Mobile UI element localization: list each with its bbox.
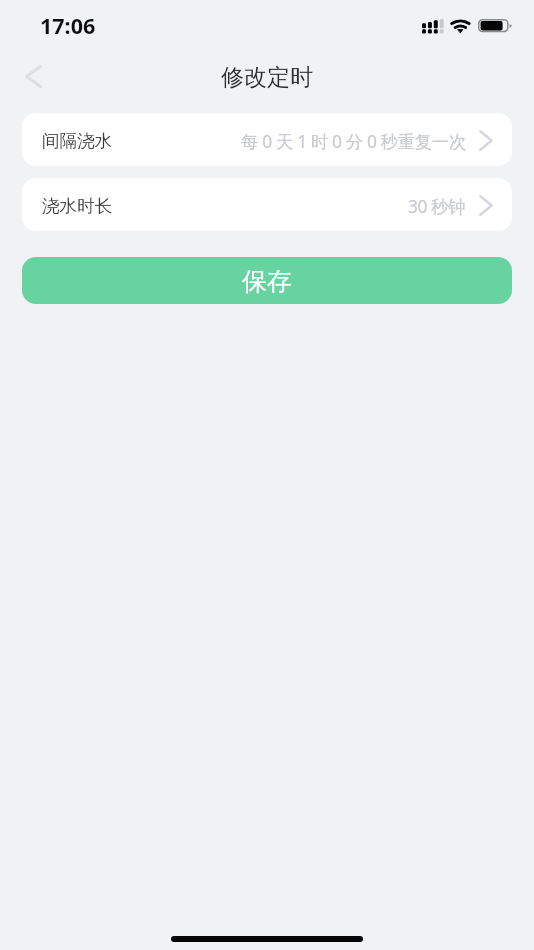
button[interactable]: 间隔浇水 [22, 113, 512, 166]
staticText: 浇水时长 [42, 195, 113, 217]
staticText: 间隔浇水 [42, 130, 113, 152]
button[interactable]: Back [8, 51, 58, 101]
staticText: 17:06 [40, 11, 96, 40]
staticText: 修改定时 [221, 63, 313, 92]
button[interactable]: 浇水时长 [22, 178, 512, 231]
staticText: 保存 [242, 266, 292, 297]
staticText: 每 0 天 1 时 0 分 0 秒重复一次 [241, 129, 466, 153]
staticText: 30 秒钟 [408, 194, 466, 218]
button[interactable]: 保存 [22, 257, 512, 304]
